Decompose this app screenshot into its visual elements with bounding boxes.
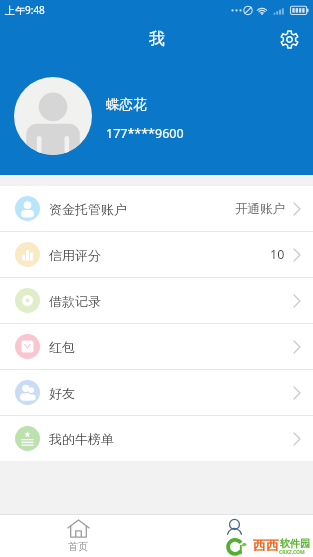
staticText: 借款记录 — [49, 293, 101, 309]
staticText: 177****9600 — [106, 125, 184, 142]
staticText: 西西 — [253, 537, 279, 553]
staticText: 好友 — [49, 385, 75, 401]
button[interactable]: 借款记录 — [0, 278, 313, 323]
button[interactable]: 我的牛榜单 — [0, 416, 313, 461]
button[interactable]: 红包 — [0, 324, 313, 369]
button[interactable]: Settings — [278, 28, 300, 50]
button[interactable]: 我 — [156, 515, 313, 557]
staticText: 蝶恋花 — [106, 96, 147, 113]
staticText: 10 — [270, 246, 285, 263]
staticText: 我 — [149, 29, 165, 49]
staticText: 上午9:48 — [5, 3, 45, 17]
staticText: 信用评分 — [49, 247, 101, 263]
button[interactable]: 信用评分 — [0, 232, 313, 277]
staticText: 资金托管账户 — [49, 201, 127, 217]
staticText: 软件园 — [280, 537, 310, 550]
staticText: 开通账户 — [235, 201, 285, 217]
staticText: 首页 — [68, 540, 88, 553]
staticText: 我 — [230, 540, 240, 553]
staticText: CRXZ.COM — [279, 549, 305, 556]
staticText: 红包 — [49, 339, 75, 355]
button[interactable]: 资金托管账户 — [0, 186, 313, 231]
button[interactable]: 首页 — [0, 515, 156, 557]
button[interactable]: 好友 — [0, 370, 313, 415]
staticText: 我的牛榜单 — [49, 431, 114, 447]
